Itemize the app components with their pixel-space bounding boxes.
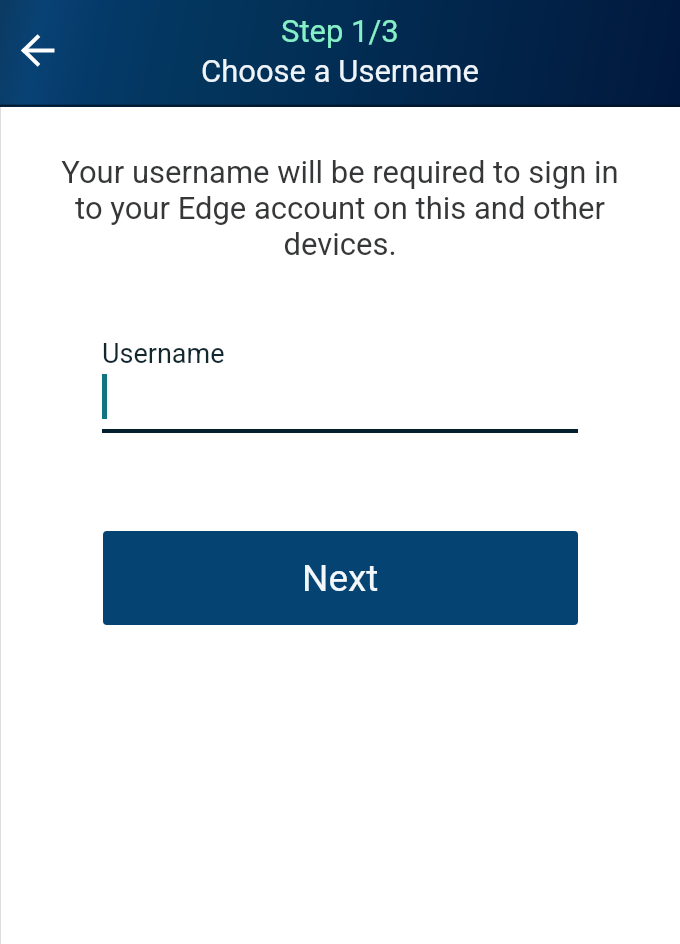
staticText: Username — [102, 338, 225, 370]
staticText: Step 1/3 — [281, 13, 399, 49]
button[interactable]: Next — [103, 531, 578, 625]
button[interactable]: Back — [8, 20, 68, 80]
staticText: Next — [302, 557, 379, 600]
staticText: Choose a Username — [201, 53, 479, 89]
button[interactable] — [102, 372, 578, 424]
staticText: Your username will be required to sign i… — [57, 154, 623, 262]
